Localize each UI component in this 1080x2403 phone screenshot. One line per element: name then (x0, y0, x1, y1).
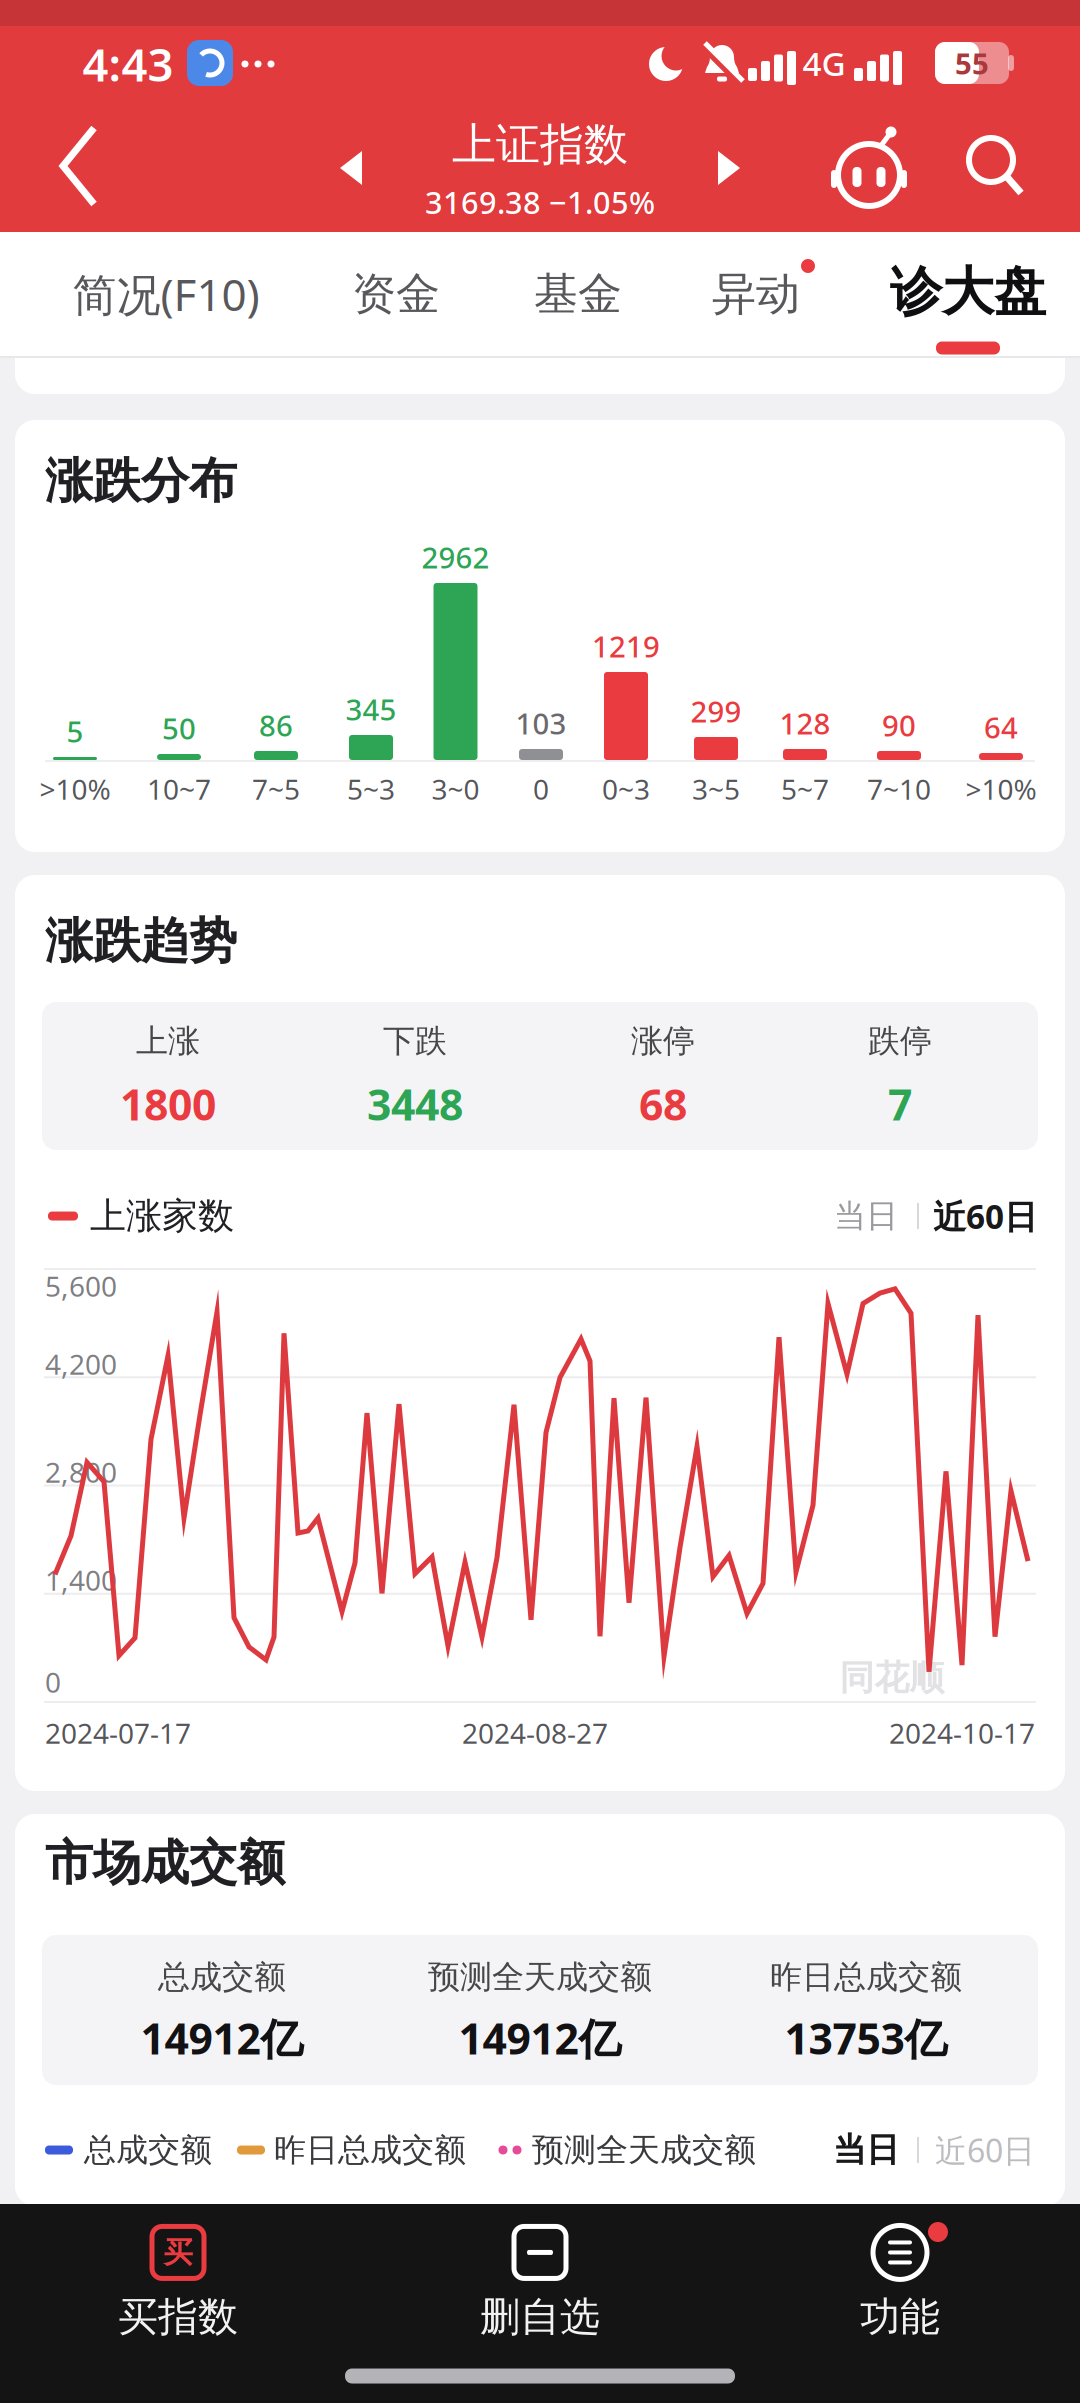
button[interactable]: 上证指数 (425, 118, 655, 222)
staticText: 跌停 (868, 1021, 932, 1061)
staticText: 1800 (120, 1076, 216, 1132)
staticText: 当日 (833, 2129, 899, 2170)
staticText: 上涨 (136, 1021, 200, 1061)
staticText: 功能 (860, 2292, 940, 2341)
staticText: 涨跌趋势 (45, 911, 237, 970)
button[interactable]: Previous stock (340, 151, 362, 185)
staticText: 4,200 (45, 1345, 117, 1383)
button[interactable]: Assistant (824, 123, 914, 213)
staticText: 预测全天成交额 (428, 1957, 652, 1997)
staticText: 7~5 (252, 770, 300, 808)
button[interactable]: 近60日 (915, 2120, 1055, 2180)
staticText: 资金 (352, 267, 440, 321)
button[interactable]: 当日 (811, 1186, 921, 1246)
button[interactable]: 异动 (681, 239, 831, 349)
staticText: 10~7 (147, 770, 211, 808)
staticText: 128 (779, 703, 830, 742)
staticText: 5,600 (45, 1267, 117, 1305)
staticText: 近60日 (933, 1194, 1037, 1238)
staticText: 买 (163, 2234, 192, 2270)
staticText: 3~5 (692, 770, 740, 808)
staticText: 103 (515, 703, 566, 742)
staticText: 55 (955, 43, 989, 82)
staticText: 2,800 (45, 1453, 117, 1491)
staticText: 13753亿 (784, 2010, 947, 2066)
staticText: 14912亿 (140, 2010, 303, 2066)
staticText: 上证指数 (452, 118, 628, 172)
staticText: 5 (66, 711, 83, 750)
staticText: 345 (345, 689, 396, 728)
staticText: 2024-08-27 (462, 1714, 608, 1752)
staticText: 涨停 (631, 1021, 695, 1061)
staticText: 预测全天成交额 (532, 2130, 756, 2170)
staticText: 近60日 (935, 2129, 1035, 2171)
button[interactable]: 功能 (860, 2224, 940, 2341)
staticText: 买指数 (118, 2292, 238, 2341)
staticText: 4G (802, 41, 845, 85)
staticText: 删自选 (480, 2292, 600, 2341)
staticText: 2962 (421, 537, 489, 576)
staticText: 7~10 (867, 770, 931, 808)
staticText: 同花顺 (839, 1657, 944, 1699)
button[interactable]: Back (58, 124, 102, 208)
staticText: >10% (965, 770, 1036, 808)
staticText: 2024-10-17 (889, 1714, 1035, 1752)
button[interactable]: 简况(F10) (36, 239, 296, 349)
staticText: 总成交额 (84, 2130, 212, 2170)
staticText: 3448 (367, 1076, 463, 1132)
staticText: 5~3 (347, 770, 395, 808)
staticText: 299 (690, 691, 741, 730)
staticText: 市场成交额 (45, 1833, 285, 1892)
staticText: 64 (984, 707, 1018, 746)
staticText: 68 (639, 1076, 687, 1132)
button[interactable]: 近60日 (915, 1186, 1055, 1246)
staticText: 当日 (834, 1196, 898, 1236)
staticText: 3~0 (431, 770, 479, 808)
staticText: 昨日总成交额 (770, 1957, 962, 1997)
staticText: 7 (888, 1076, 912, 1132)
staticText: 0~3 (602, 770, 650, 808)
staticText: 86 (259, 705, 293, 744)
staticText: 基金 (534, 267, 622, 321)
staticText: 1219 (592, 626, 660, 665)
staticText: 涨跌分布 (45, 451, 237, 510)
staticText: 90 (882, 705, 916, 744)
button[interactable]: 资金 (321, 239, 471, 349)
staticText: 3169.38 −1.05% (425, 182, 655, 222)
staticText: 下跌 (383, 1021, 447, 1061)
staticText: 1,400 (45, 1561, 117, 1599)
staticText: 4:43 (82, 34, 173, 94)
staticText: >10% (39, 770, 110, 808)
staticText: 5~7 (781, 770, 829, 808)
button[interactable]: 诊大盘 (873, 237, 1063, 347)
staticText: 2024-07-17 (45, 1714, 191, 1752)
button[interactable]: Next stock (718, 151, 740, 185)
staticText: 0 (45, 1663, 61, 1701)
staticText: 总成交额 (158, 1957, 286, 1997)
button[interactable]: 买 (118, 2224, 238, 2341)
staticText: 诊大盘 (890, 260, 1046, 324)
staticText: 上涨家数 (90, 1194, 234, 1238)
staticText: 昨日总成交额 (274, 2130, 466, 2170)
staticText: 14912亿 (458, 2010, 621, 2066)
button[interactable]: 当日 (811, 2120, 921, 2180)
staticText: 50 (162, 708, 196, 747)
button[interactable]: 基金 (503, 239, 653, 349)
button[interactable]: Search (965, 135, 1027, 197)
staticText: 简况(F10) (72, 265, 259, 323)
staticText: 异动 (712, 267, 800, 321)
staticText: 0 (533, 770, 549, 808)
button[interactable]: 删自选 (480, 2224, 600, 2341)
